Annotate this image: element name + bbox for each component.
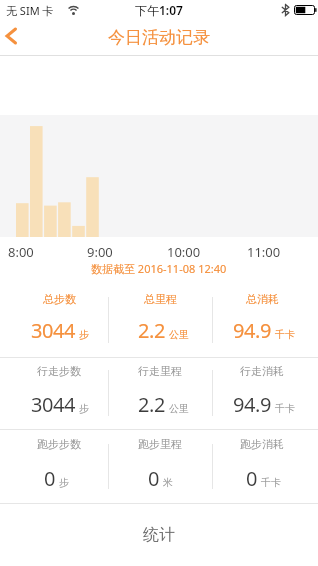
staticText: 无 SIM 卡	[6, 3, 54, 18]
staticText: 千卡	[275, 328, 295, 341]
button[interactable]: 统计	[0, 504, 318, 566]
staticText: 3044	[31, 391, 76, 418]
staticText: 行走步数	[37, 364, 81, 378]
staticText: 跑步步数	[37, 437, 81, 451]
staticText: 步	[79, 328, 89, 341]
staticText: 总里程	[144, 292, 177, 306]
staticText: 公里	[169, 328, 189, 341]
staticText: 94.9	[233, 391, 272, 418]
staticText: 0	[44, 465, 56, 492]
staticText: 总消耗	[246, 292, 279, 306]
staticText: 2.2	[138, 317, 166, 344]
staticText: 下午1:07	[135, 2, 183, 18]
staticText: 数据截至 2016-11-08 12:40	[91, 261, 227, 276]
staticText: 步	[79, 402, 89, 415]
staticText: 千卡	[275, 402, 295, 415]
staticText: 11:00	[247, 243, 281, 261]
button[interactable]	[0, 20, 40, 55]
staticText: 94.9	[233, 317, 272, 344]
staticText: 米	[163, 476, 173, 489]
staticText: 9:00	[87, 243, 113, 261]
staticText: 10:00	[167, 243, 201, 261]
staticText: 千卡	[261, 476, 281, 489]
staticText: 0	[148, 465, 160, 492]
staticText: 统计	[143, 525, 175, 545]
staticText: 3044	[31, 317, 76, 344]
staticText: 公里	[169, 402, 189, 415]
staticText: 步	[59, 476, 69, 489]
staticText: 8:00	[8, 243, 34, 261]
staticText: 行走消耗	[240, 364, 284, 378]
staticText: 行走里程	[138, 364, 182, 378]
staticText: 总步数	[43, 292, 76, 306]
staticText: 0	[246, 465, 258, 492]
staticText: 跑步消耗	[240, 437, 284, 451]
staticText: 今日活动记录	[108, 27, 210, 48]
staticText: 2.2	[138, 391, 166, 418]
staticText: 跑步里程	[138, 437, 182, 451]
